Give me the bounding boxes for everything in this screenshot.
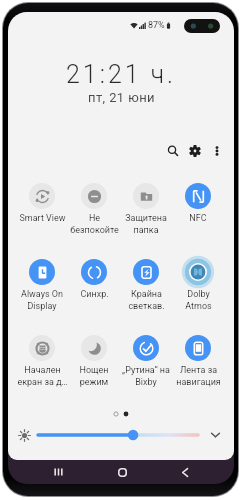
button[interactable]: Нощен режим: [68, 331, 120, 387]
button[interactable]: NFC: [172, 179, 224, 224]
button[interactable]: Не безпокойте: [68, 179, 120, 235]
button[interactable]: [34, 429, 202, 441]
staticText: 21:21 ч.: [66, 60, 177, 89]
button[interactable]: „Рутина“ на Bixby: [120, 331, 172, 387]
staticText: Защитена папка: [125, 213, 167, 235]
staticText: Always On Display: [21, 289, 63, 311]
staticText: пт, 21 юни: [88, 90, 155, 105]
staticText: NFC: [189, 213, 207, 224]
button[interactable]: Always On Display: [16, 255, 68, 311]
button[interactable]: Dolby Atmos: [172, 255, 224, 311]
button[interactable]: Smart View: [16, 179, 68, 224]
button[interactable]: Expand: [207, 427, 223, 443]
staticText: Не безпокойте: [70, 213, 119, 235]
button[interactable]: Защитена папка: [120, 179, 172, 235]
button[interactable]: Синхр.: [68, 255, 120, 300]
button[interactable]: Лента за навигация: [172, 331, 224, 387]
button[interactable]: Back: [175, 462, 195, 482]
staticText: Лента за навигация: [176, 365, 221, 387]
staticText: Dolby Atmos: [185, 289, 212, 311]
staticText: Нощен режим: [79, 365, 109, 387]
button[interactable]: More options: [209, 143, 225, 159]
staticText: „Рутина“ на Bixby: [122, 365, 170, 387]
button[interactable]: Начален екран за д…: [16, 331, 68, 387]
staticText: Крайна светкав.: [128, 289, 165, 311]
button[interactable]: Brightness: [16, 427, 32, 443]
button[interactable]: Recents: [48, 462, 68, 482]
button[interactable]: Search: [165, 143, 181, 159]
button[interactable]: Home: [112, 462, 132, 482]
staticText: 87%: [148, 20, 165, 31]
staticText: Синхр.: [80, 289, 109, 300]
staticText: Начален екран за д…: [17, 365, 68, 387]
staticText: Smart View: [19, 213, 66, 224]
button[interactable]: Settings: [187, 143, 203, 159]
button[interactable]: Крайна светкав.: [120, 255, 172, 311]
